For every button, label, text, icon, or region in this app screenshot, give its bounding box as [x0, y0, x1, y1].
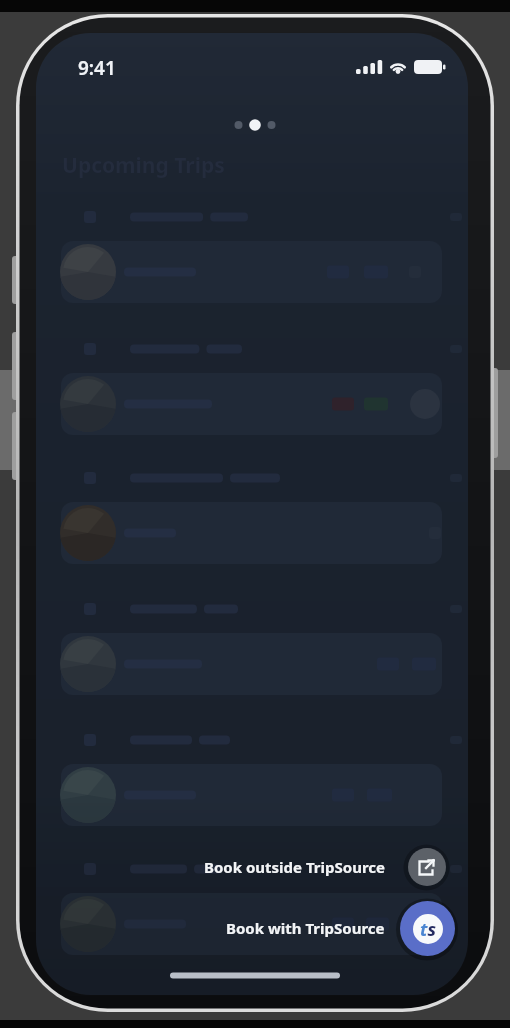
staticText: Book with TripSource [226, 918, 385, 938]
button[interactable] [61, 241, 442, 303]
button[interactable] [61, 502, 442, 564]
staticText: Book outside TripSource [204, 857, 385, 877]
staticText: 9:41 [78, 55, 116, 81]
staticText: Upcoming Trips [62, 151, 225, 180]
button[interactable]: Book with TripSource [205, 911, 385, 944]
staticText: ts [420, 917, 436, 942]
button[interactable]: ts [400, 901, 455, 956]
button[interactable] [61, 633, 442, 695]
button[interactable] [61, 893, 442, 955]
button[interactable] [61, 764, 442, 826]
button[interactable] [408, 848, 446, 886]
button[interactable]: Book outside TripSource [185, 850, 385, 883]
button[interactable] [61, 373, 442, 435]
